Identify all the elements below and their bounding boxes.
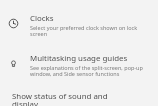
staticText: See explanations of the split-screen, po… [30, 64, 145, 77]
button[interactable]: Clocks [0, 13, 158, 37]
other: Multitasking usage guides [8, 58, 19, 69]
staticText: Multitasking usage guides [30, 53, 128, 64]
button[interactable]: Multitasking usage guides [0, 53, 158, 77]
other: Clocks [8, 18, 19, 29]
button[interactable]: Show status of sound and display [0, 91, 158, 106]
staticText: Select your preferred clock shown on loc… [30, 24, 145, 37]
staticText: Show status of sound and display [12, 91, 108, 106]
staticText: Clocks [30, 13, 54, 24]
